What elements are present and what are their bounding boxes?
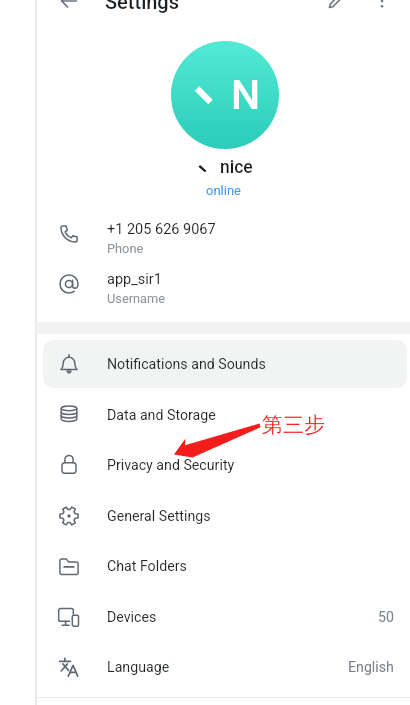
staticText: English (348, 659, 394, 676)
button[interactable]: Edit (314, 0, 358, 23)
staticText: Phone (107, 241, 144, 256)
button[interactable]: Data and Storage (43, 391, 407, 439)
button[interactable]: Privacy and Security (43, 441, 407, 489)
staticText: +1 205 626 9067 (107, 221, 216, 238)
staticText: Devices (107, 609, 157, 626)
button[interactable]: nice (196, 158, 256, 178)
staticText: 第三步 (262, 412, 325, 438)
staticText: Settings (105, 0, 180, 13)
button[interactable]: Devices (43, 593, 407, 641)
button[interactable]: Notifications and Sounds (43, 340, 407, 388)
staticText: online (206, 183, 241, 198)
staticText: 50 (378, 609, 394, 626)
staticText: Language (107, 659, 170, 676)
staticText: nice (220, 157, 253, 177)
staticText: Chat Folders (107, 558, 187, 575)
staticText: Data and Storage (107, 407, 216, 424)
staticText: app_sir1 (107, 271, 162, 288)
staticText: Username (107, 291, 166, 306)
staticText: N (231, 71, 261, 119)
staticText: General Settings (107, 508, 211, 525)
button[interactable]: Chat Folders (43, 542, 407, 590)
button[interactable]: More options (360, 0, 404, 23)
button[interactable]: app_sir1 (36, 259, 410, 309)
staticText: Privacy and Security (107, 457, 235, 474)
button[interactable]: Back (47, 0, 91, 23)
staticText: Notifications and Sounds (107, 356, 266, 373)
button[interactable]: General Settings (43, 492, 407, 540)
button[interactable]: Language (43, 643, 407, 691)
button[interactable]: Profile photo (171, 41, 279, 149)
button[interactable]: +1 205 626 9067 (36, 209, 410, 259)
